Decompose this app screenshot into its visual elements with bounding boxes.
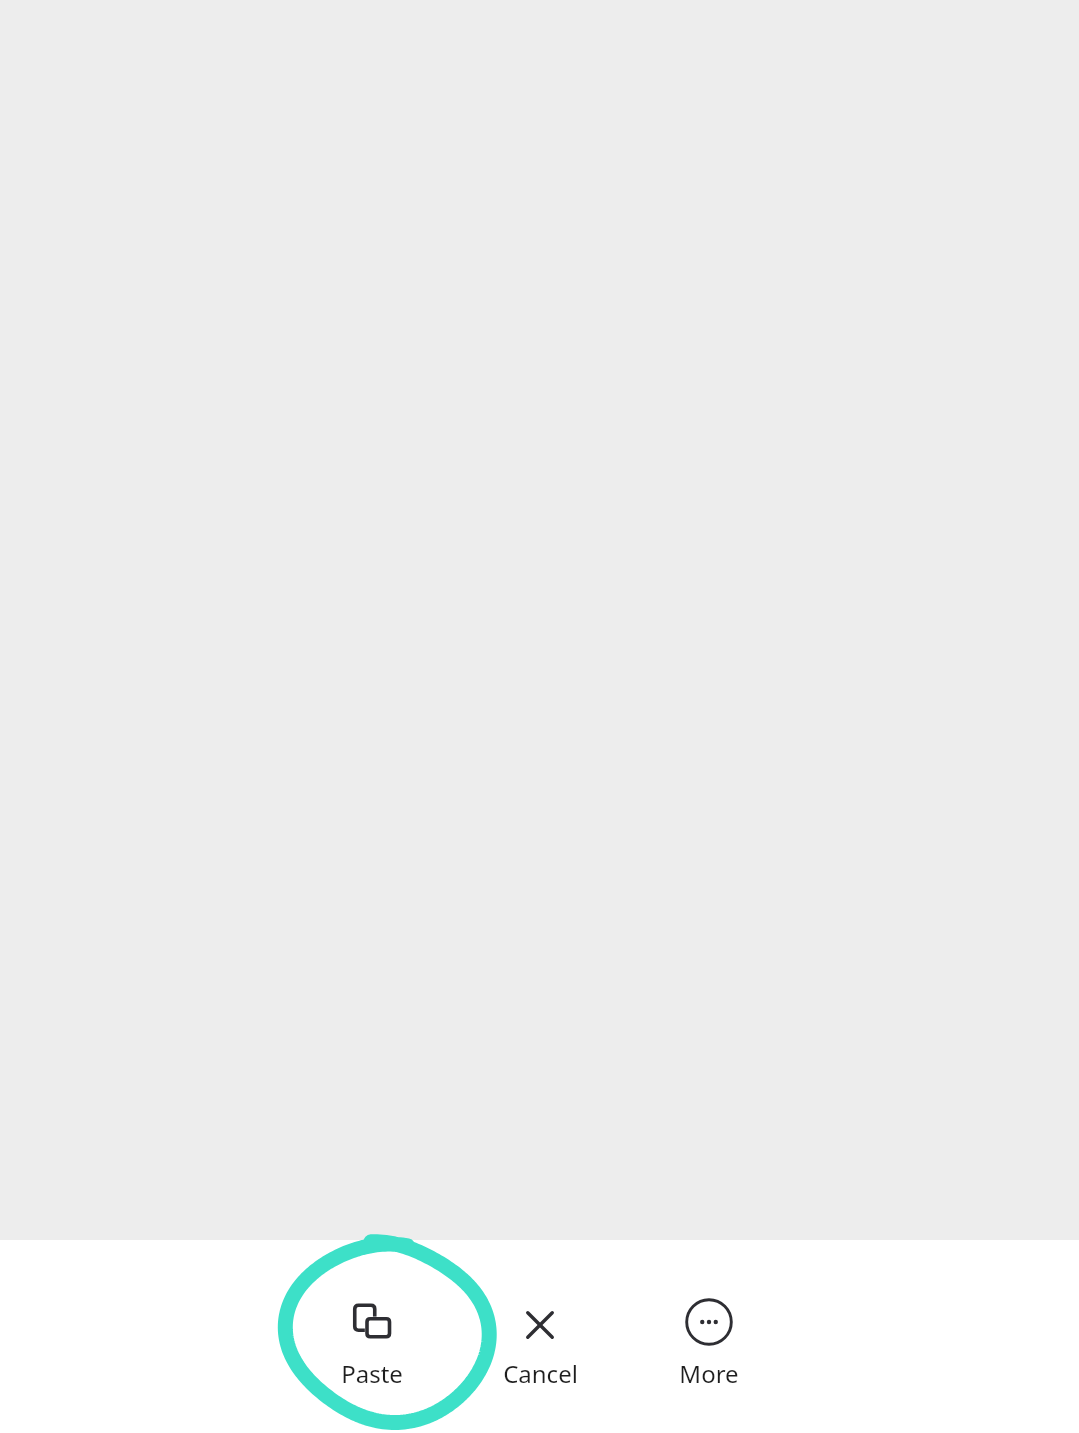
staticText: Cancel	[503, 1357, 578, 1390]
staticText: Paste	[341, 1357, 403, 1390]
button[interactable]: More	[634, 1281, 784, 1390]
button[interactable]: Paste	[297, 1282, 447, 1390]
staticText: More	[679, 1357, 739, 1390]
button[interactable]: Cancel	[465, 1284, 615, 1390]
